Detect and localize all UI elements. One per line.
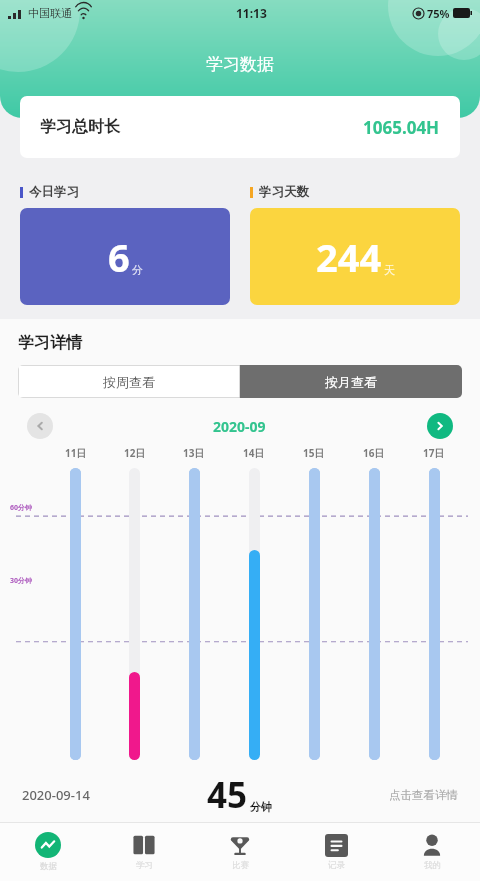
button[interactable] <box>189 468 200 760</box>
staticText: 点击查看详情 <box>389 788 458 802</box>
staticText: 244 <box>316 231 382 283</box>
staticText: 1065.04H <box>363 116 440 139</box>
staticText: 学习总时长 <box>40 117 120 137</box>
button[interactable] <box>249 468 260 760</box>
button[interactable]: 244 <box>250 208 460 305</box>
staticText: 按周查看 <box>103 374 155 390</box>
staticText: 中国联通 <box>28 6 72 20</box>
staticText: 11:13 <box>236 5 267 21</box>
staticText: 比赛 <box>232 860 249 871</box>
staticText: 60分钟 <box>10 503 33 513</box>
staticText: 学习 <box>136 860 153 871</box>
staticText: 75% <box>427 6 450 21</box>
staticText: 分 <box>132 263 143 277</box>
staticText: 分钟 <box>250 800 272 814</box>
staticText: 17日 <box>423 446 445 460</box>
staticText: 2020-09 <box>213 417 266 436</box>
staticText: 15日 <box>303 446 325 460</box>
button[interactable] <box>429 468 440 760</box>
staticText: 我的 <box>424 860 441 871</box>
button[interactable]: 按周查看 <box>18 365 240 398</box>
staticText: 今日学习 <box>29 184 79 200</box>
button[interactable] <box>369 468 380 760</box>
staticText: 学习详情 <box>18 333 82 353</box>
button[interactable]: 数据 <box>0 823 96 881</box>
staticText: 6 <box>108 231 130 283</box>
staticText: 数据 <box>40 861 57 872</box>
button[interactable]: 学习 <box>96 823 192 881</box>
staticText: 12日 <box>124 446 146 460</box>
button[interactable]: 比赛 <box>192 823 288 881</box>
staticText: 14日 <box>243 446 265 460</box>
staticText: 13日 <box>183 446 205 460</box>
button[interactable]: Previous month <box>27 413 53 439</box>
button[interactable]: 按月查看 <box>240 365 462 398</box>
staticText: 30分钟 <box>10 576 33 586</box>
button[interactable] <box>309 468 320 760</box>
staticText: 学习数据 <box>206 54 274 75</box>
staticText: 记录 <box>328 860 345 871</box>
button[interactable] <box>70 468 81 760</box>
staticText: 11日 <box>65 446 87 460</box>
button[interactable]: 记录 <box>288 823 384 881</box>
button[interactable]: 点击查看详情 <box>389 788 458 802</box>
button[interactable] <box>129 468 140 760</box>
staticText: 学习天数 <box>259 184 309 200</box>
staticText: 45 <box>207 771 248 819</box>
staticText: 16日 <box>363 446 385 460</box>
button[interactable]: Next month <box>427 413 453 439</box>
staticText: 2020-09-14 <box>22 786 90 804</box>
button[interactable]: 学习总时长 <box>20 96 460 158</box>
staticText: 按月查看 <box>325 374 377 390</box>
staticText: 天 <box>384 263 395 277</box>
button[interactable]: 6 <box>20 208 230 305</box>
button[interactable]: 我的 <box>384 823 480 881</box>
